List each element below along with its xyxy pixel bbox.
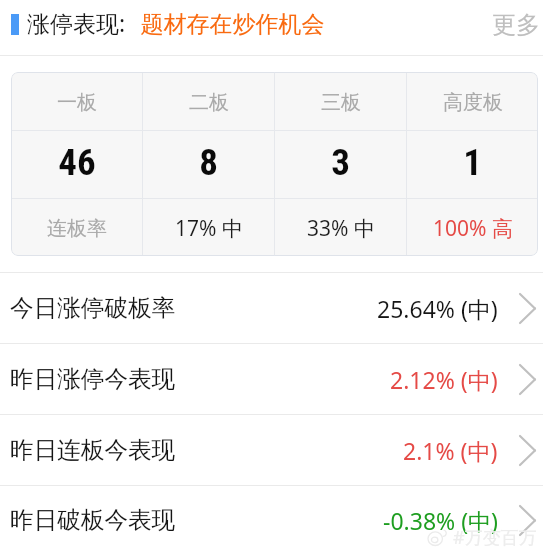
staticText: 昨日涨停今表现	[10, 364, 176, 394]
staticText: 昨日连板今表现	[10, 435, 176, 465]
staticText: 涨停表现: 题材存在炒作机会	[27, 7, 325, 38]
button[interactable]: 昨日涨停今表现	[0, 344, 543, 414]
staticText: 2.12% (中)	[390, 364, 498, 395]
staticText: 3	[331, 141, 350, 184]
staticText: 高度板	[443, 90, 503, 115]
staticText: -0.38% (中)	[383, 505, 498, 536]
staticText: 连板率	[47, 216, 107, 241]
staticText: 100% 高	[433, 214, 513, 243]
staticText: 更多	[492, 10, 540, 40]
button[interactable]: 今日涨停破板率	[0, 273, 543, 343]
staticText: #万变百万	[453, 525, 537, 550]
staticText: 昨日破板今表现	[10, 505, 176, 535]
button[interactable]: 更多	[491, 6, 541, 44]
staticText: 46	[58, 141, 96, 184]
staticText: 今日涨停破板率	[10, 293, 176, 323]
button[interactable]: 昨日破板今表现	[0, 486, 543, 554]
staticText: 二板	[189, 90, 229, 115]
button[interactable]: 昨日连板今表现	[0, 415, 543, 485]
staticText: 33% 中	[307, 214, 375, 243]
staticText: 17% 中	[175, 214, 243, 243]
staticText: 三板	[321, 90, 361, 115]
staticText: 一板	[57, 90, 97, 115]
staticText: 2.1% (中)	[403, 435, 498, 466]
staticText: 8	[199, 141, 218, 184]
staticText: 1	[463, 141, 482, 184]
staticText: 25.64% (中)	[377, 293, 498, 324]
